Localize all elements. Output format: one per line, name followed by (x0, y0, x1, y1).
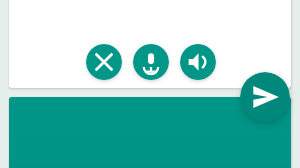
button[interactable]: Send (240, 72, 290, 122)
button[interactable]: Volume (180, 44, 216, 80)
button[interactable]: Microphone (133, 44, 169, 80)
button[interactable]: Close (86, 44, 122, 80)
